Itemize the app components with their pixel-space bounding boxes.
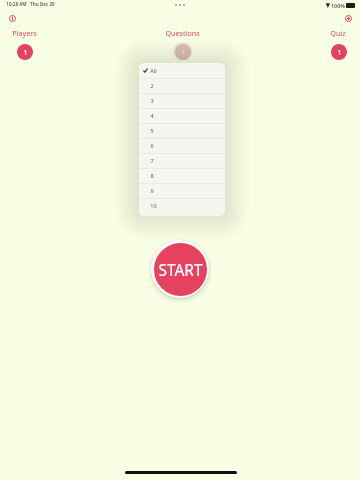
button[interactable]: 5 <box>139 123 225 138</box>
button[interactable]: 1 <box>173 42 192 61</box>
staticText: Players <box>12 28 37 38</box>
staticText: 5 <box>150 127 154 135</box>
staticText: Quiz <box>330 28 346 38</box>
button[interactable]: 4 <box>139 108 225 123</box>
button[interactable]: 10 <box>139 198 225 213</box>
staticText: 2 <box>150 82 154 90</box>
staticText: 1 <box>181 47 186 57</box>
button[interactable]: 7 <box>139 153 225 168</box>
button[interactable]: 8 <box>139 168 225 183</box>
staticText: 10:28 AM Thu Dec 29 <box>6 1 55 7</box>
staticText: Questions <box>165 28 200 38</box>
button[interactable]: 9 <box>139 183 225 198</box>
staticText: 10 <box>150 202 157 210</box>
button[interactable]: 1 <box>15 42 34 61</box>
button[interactable]: Add <box>341 11 355 25</box>
button[interactable]: Info <box>5 11 19 25</box>
staticText: 7 <box>150 157 154 165</box>
staticText: START <box>158 259 203 280</box>
staticText: 9 <box>150 187 154 195</box>
staticText: 4 <box>150 112 154 120</box>
staticText: 1 <box>23 47 28 57</box>
staticText: 8 <box>150 172 154 180</box>
staticText: 3 <box>150 97 154 105</box>
button[interactable]: All <box>139 63 225 78</box>
staticText: All <box>150 67 157 75</box>
button[interactable]: 3 <box>139 93 225 108</box>
button[interactable]: 1 <box>329 42 348 61</box>
button[interactable]: 6 <box>139 138 225 153</box>
button[interactable]: START <box>151 240 209 298</box>
button[interactable]: 2 <box>139 78 225 93</box>
staticText: 1 <box>337 47 342 57</box>
staticText: 6 <box>150 142 154 150</box>
staticText: 100% <box>331 2 345 9</box>
